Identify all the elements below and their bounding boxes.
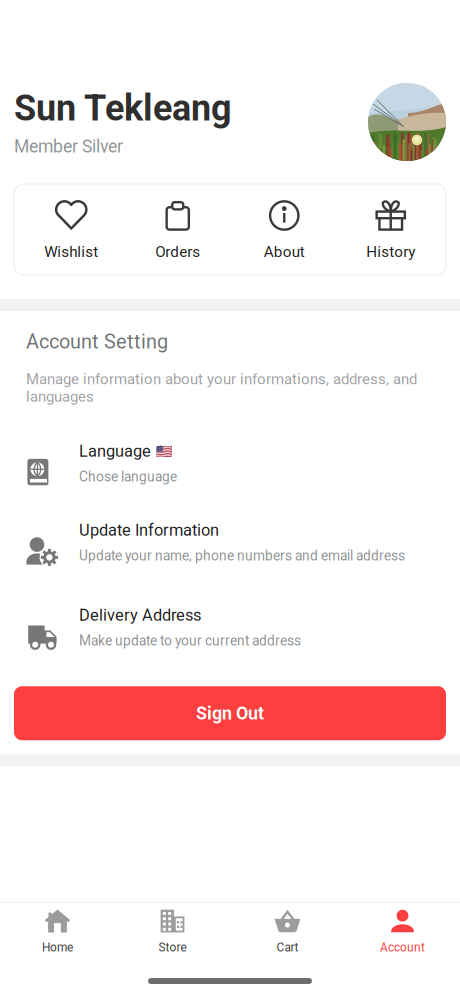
button[interactable]: Language	[0, 437, 460, 489]
staticText: Home	[42, 940, 73, 954]
staticText: Sun Tekleang	[14, 87, 232, 129]
button[interactable]: Orders	[124, 184, 231, 275]
staticText: Update your name, phone numbers and emai…	[79, 548, 405, 564]
staticText: Make update to your current address	[79, 633, 301, 649]
staticText: Manage information about your informatio…	[26, 370, 417, 405]
staticText: Wishlist	[44, 243, 98, 261]
button[interactable]: Sign Out	[14, 686, 446, 740]
button[interactable]: Delivery Address	[0, 601, 460, 653]
staticText: Account Setting	[26, 330, 168, 353]
staticText: Chose language	[79, 469, 177, 485]
button[interactable]: Wishlist	[18, 184, 124, 275]
staticText: About	[264, 243, 305, 261]
staticText: History	[366, 243, 415, 261]
button[interactable]: Update Information	[0, 516, 460, 568]
button[interactable]: Home	[0, 903, 115, 959]
button[interactable]: History	[337, 184, 444, 275]
staticText: Account	[380, 940, 425, 954]
staticText: 🇺🇸	[156, 443, 173, 459]
staticText: Member Silver	[14, 136, 123, 157]
button[interactable]: Store	[115, 903, 230, 959]
staticText: Language	[79, 442, 151, 461]
staticText: Sign Out	[196, 703, 264, 724]
staticText: Orders	[155, 243, 200, 261]
staticText: Cart	[276, 940, 298, 954]
button[interactable]: Account	[345, 903, 460, 959]
staticText: Update Information	[79, 521, 219, 540]
button[interactable]: Cart	[230, 903, 345, 959]
button[interactable]: About	[231, 184, 337, 275]
staticText: Delivery Address	[79, 606, 201, 625]
staticText: Store	[158, 940, 186, 954]
